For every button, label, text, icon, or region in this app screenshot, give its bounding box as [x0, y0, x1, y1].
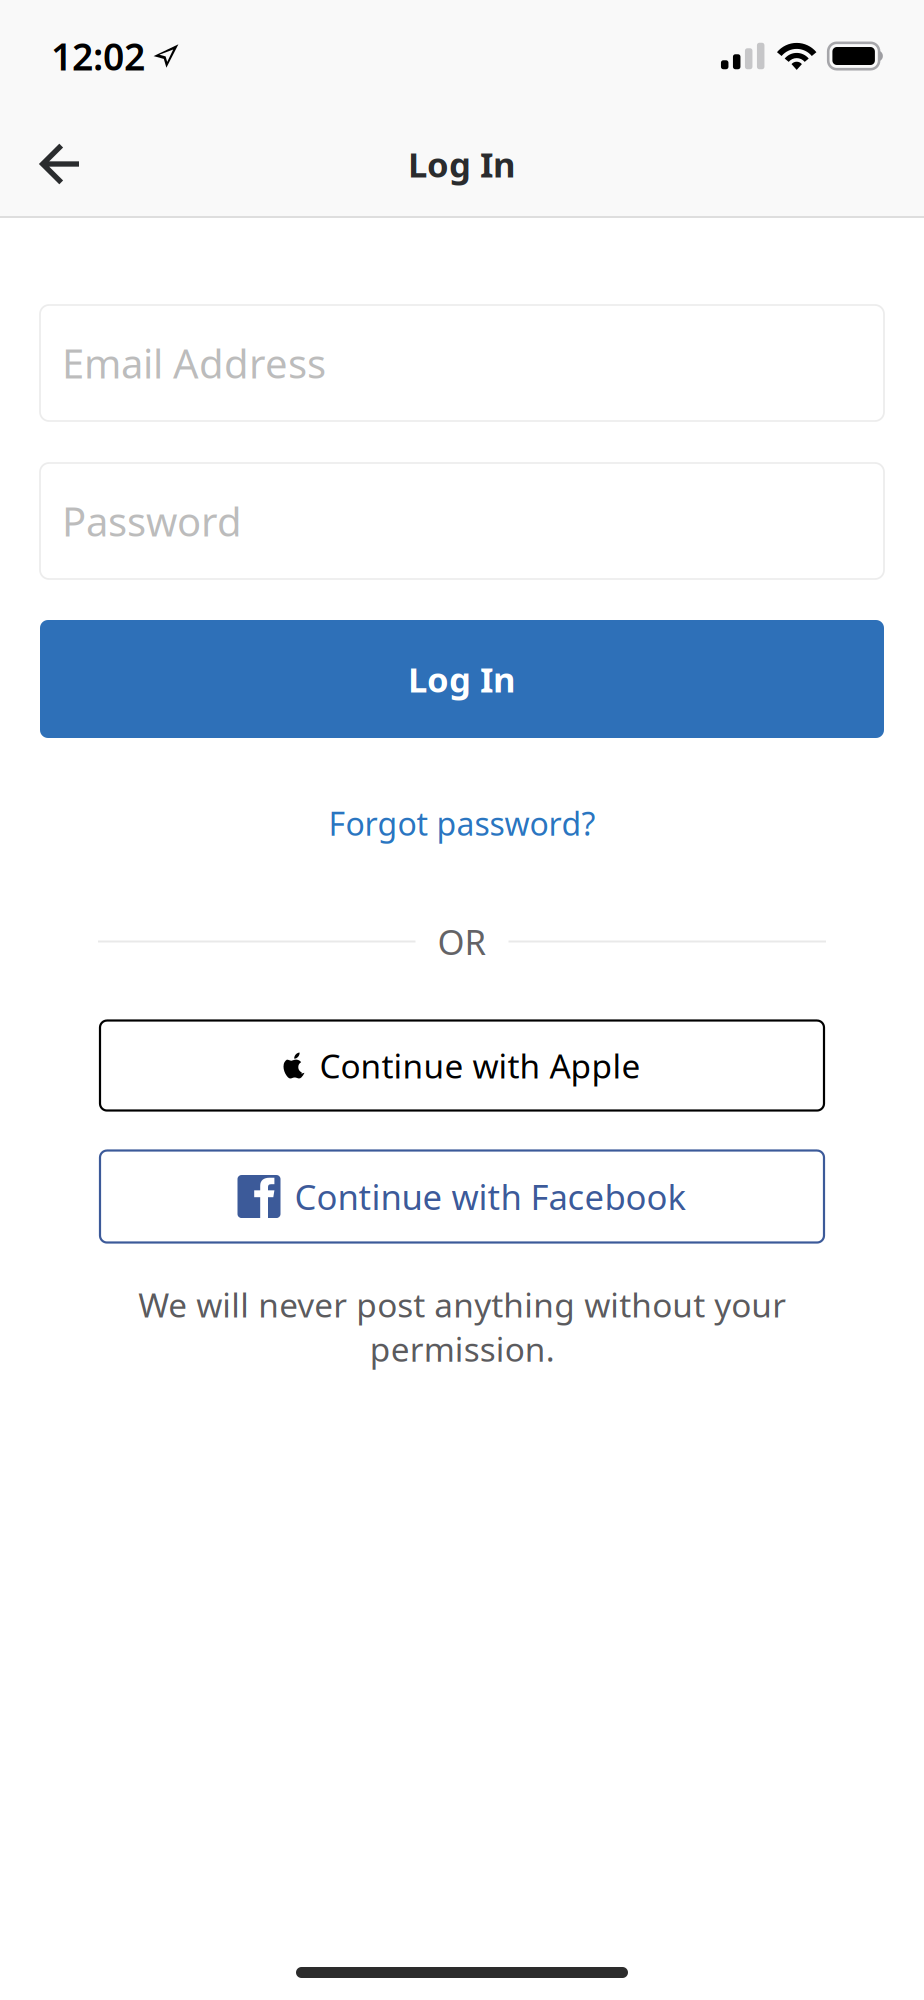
staticText: Email Address [62, 336, 326, 389]
staticText: Log In [408, 141, 516, 187]
staticText: We will never post anything without your… [138, 1282, 786, 1371]
staticText: Password [62, 494, 242, 547]
staticText: Forgot password? [328, 802, 595, 844]
staticText: OR [437, 918, 486, 964]
button[interactable]: Back [0, 112, 106, 216]
button[interactable]: Forgot password? [40, 802, 884, 844]
staticText: Log In [408, 656, 516, 702]
staticText: Continue with Facebook [294, 1173, 686, 1219]
staticText: Continue with Apple [319, 1043, 640, 1088]
button[interactable]: Continue with Apple [40, 1020, 884, 1110]
button[interactable]: Log In [40, 620, 884, 738]
button[interactable]: Password [40, 463, 884, 579]
button[interactable]: Email Address [40, 305, 884, 421]
staticText: 12:02 [51, 31, 145, 81]
button[interactable]: Continue with Facebook [40, 1150, 884, 1242]
